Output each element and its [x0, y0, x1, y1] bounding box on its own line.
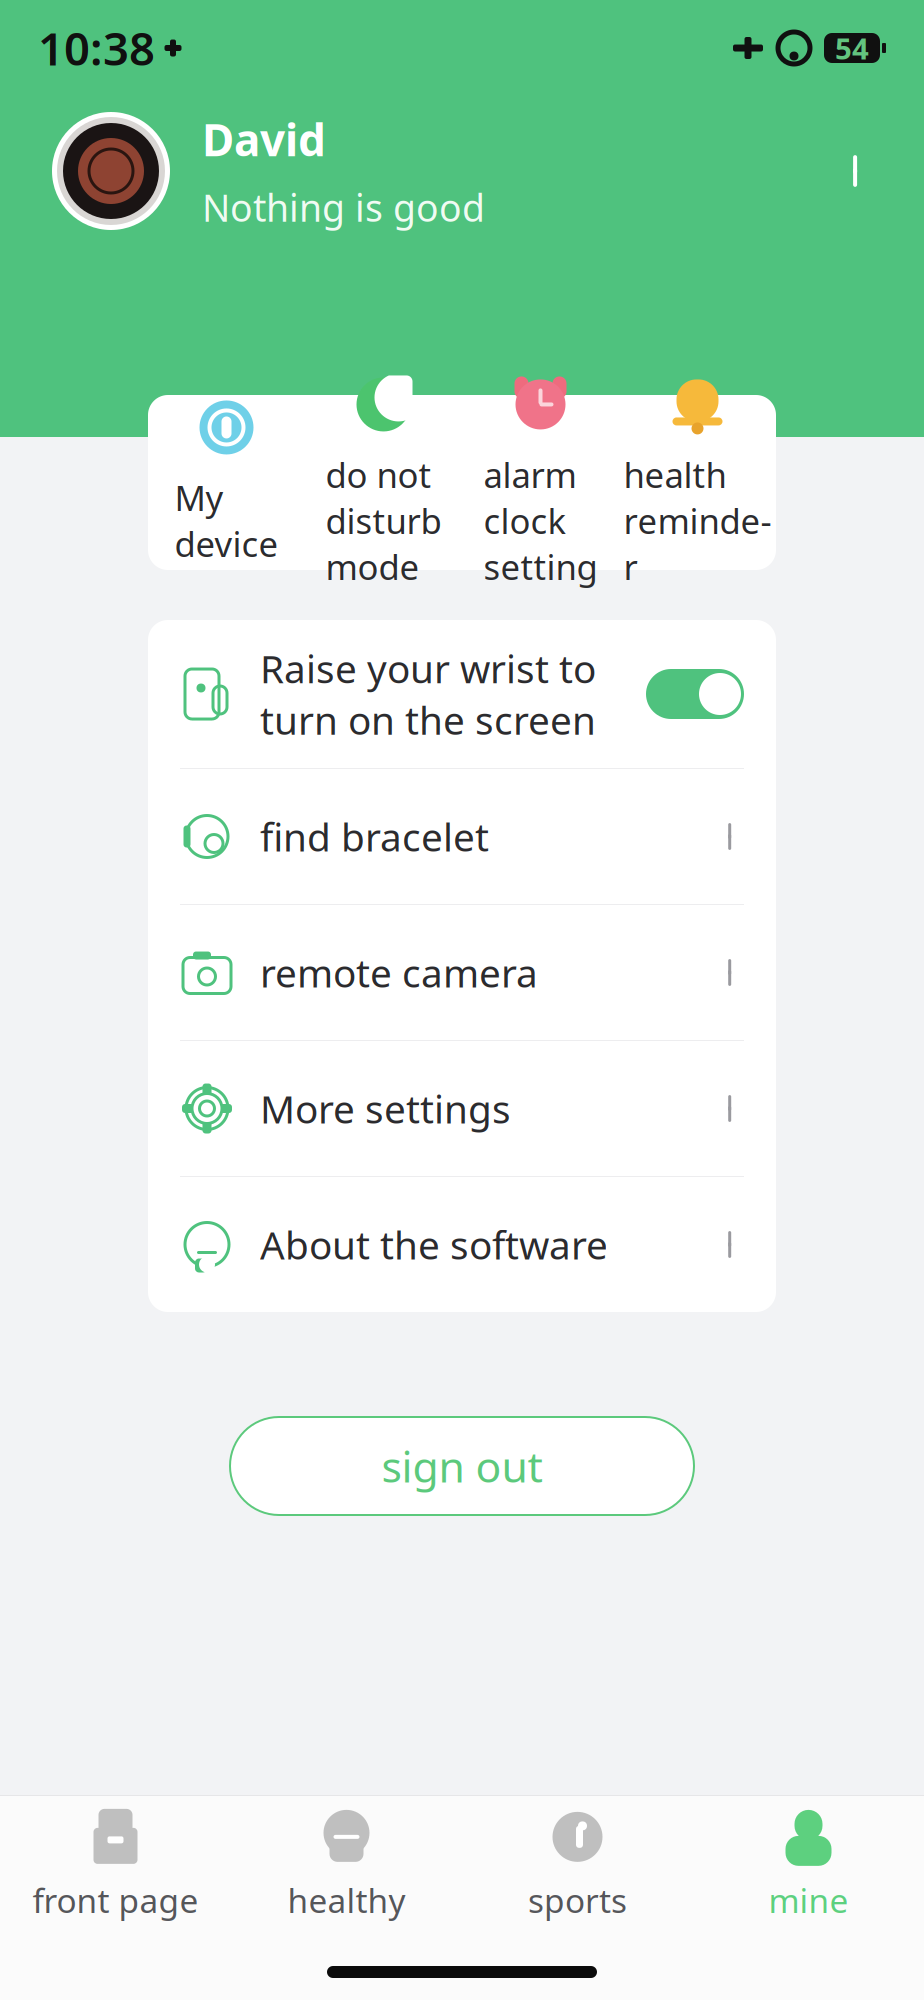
staticText: healthy: [287, 1878, 405, 1922]
button[interactable]: mine: [693, 1806, 924, 1926]
button[interactable]: David: [0, 110, 924, 232]
button[interactable]: do not disturb mode: [305, 402, 462, 562]
button[interactable]: My device: [148, 402, 305, 562]
staticText: Raise your wrist to turn on the screen: [260, 643, 596, 745]
button[interactable]: front page: [0, 1806, 231, 1926]
staticText: 10:38: [38, 18, 155, 78]
staticText: About the software: [260, 1219, 608, 1270]
button[interactable]: sports: [462, 1806, 693, 1926]
staticText: sign out: [381, 1438, 542, 1494]
staticText: do not disturb mode: [325, 451, 441, 589]
staticText: More settings: [260, 1083, 511, 1134]
staticText: mine: [768, 1878, 848, 1922]
button[interactable]: alarm clock setting: [462, 402, 619, 562]
button[interactable]: More settings: [148, 1041, 776, 1176]
button[interactable]: health reminder: [619, 402, 776, 562]
staticText: find bracelet: [260, 811, 489, 862]
staticText: health reminder: [623, 451, 771, 589]
staticText: front page: [32, 1878, 198, 1922]
staticText: Nothing is good: [202, 182, 485, 232]
staticText: David: [202, 110, 326, 168]
staticText: 54: [835, 28, 869, 67]
button[interactable]: sign out: [230, 1417, 694, 1515]
button[interactable]: remote camera: [148, 905, 776, 1040]
button[interactable]: healthy: [231, 1806, 462, 1926]
staticText: My device: [174, 474, 278, 567]
staticText: remote camera: [260, 947, 538, 998]
button[interactable]: About the software: [148, 1177, 776, 1312]
button[interactable]: find bracelet: [148, 769, 776, 904]
button[interactable]: Raise your wrist to turn on the screen: [148, 620, 776, 768]
staticText: alarm clock setting: [483, 451, 597, 589]
staticText: sports: [528, 1878, 627, 1922]
